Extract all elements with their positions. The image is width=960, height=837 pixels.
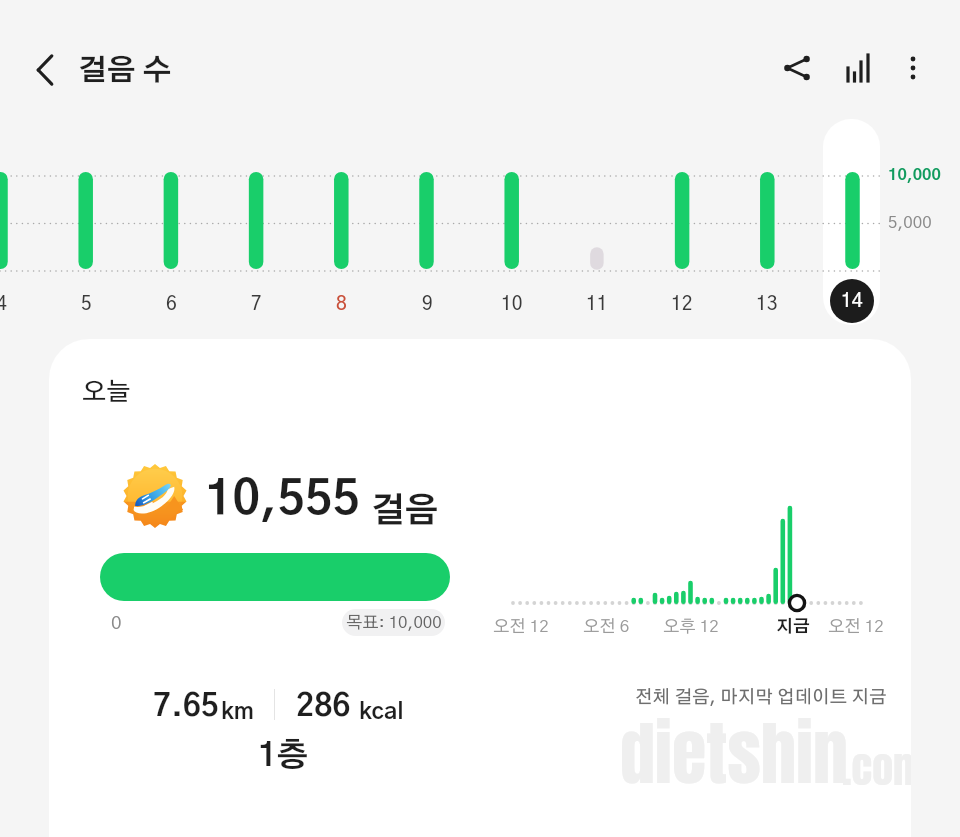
staticText: 전체 걸음, 마지막 업데이트 지금 [635, 689, 887, 707]
staticText: 6 [166, 295, 177, 314]
staticText: 오전 12 [493, 618, 549, 635]
staticText: 9 [422, 295, 433, 314]
staticText: 오후 12 [663, 618, 719, 635]
button[interactable]: Selected day 14 [823, 119, 880, 325]
staticText: 지금 [776, 618, 810, 635]
staticText: 7 [251, 295, 262, 314]
staticText: 오전 12 [828, 618, 884, 635]
staticText: 1층 [258, 740, 309, 772]
staticText: .com [842, 736, 911, 799]
staticText: 10,555 [205, 477, 361, 524]
staticText: 286 [296, 691, 351, 722]
staticText: 걸음 [371, 495, 439, 529]
button[interactable]: Share [769, 40, 825, 96]
staticText: 14 [842, 295, 864, 314]
staticText: 걸음 수 [78, 57, 172, 86]
staticText: 목표: 10,000 [346, 614, 442, 631]
staticText: 10 [501, 295, 523, 314]
staticText: 12 [671, 295, 693, 314]
staticText: 5,000 [888, 214, 932, 231]
staticText: dietshin [620, 701, 848, 806]
staticText: 오늘 [82, 380, 131, 405]
staticText: 4 [0, 295, 7, 314]
staticText: 11 [586, 295, 608, 314]
staticText: km [221, 701, 254, 724]
staticText: 13 [756, 295, 778, 314]
staticText: kcal [359, 701, 404, 724]
staticText: 오전 6 [583, 618, 630, 635]
staticText: 10,000 [888, 167, 941, 183]
staticText: 7.65 [153, 691, 219, 722]
staticText: 5 [81, 295, 92, 314]
button[interactable]: Statistics [830, 40, 886, 96]
button[interactable]: More options [885, 40, 941, 96]
staticText: 8 [336, 295, 347, 314]
staticText: 0 [111, 614, 122, 633]
staticText: 14 [841, 292, 863, 311]
button[interactable]: Back [17, 42, 73, 98]
